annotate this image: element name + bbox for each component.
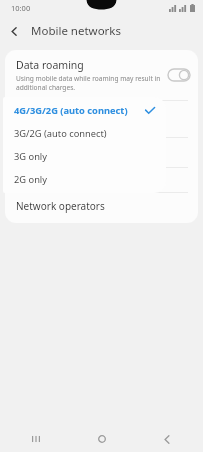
button[interactable]: Network operators	[5, 193, 198, 219]
staticText: Using mobile data while roaming may resu…	[16, 74, 161, 83]
staticText: Network operators	[16, 199, 105, 213]
staticText: 10:00	[11, 3, 31, 13]
button[interactable]: 3G/2G (auto connect)	[3, 122, 166, 145]
button[interactable]: Recent apps	[6, 426, 66, 452]
staticText: 2G only	[14, 173, 155, 186]
staticText: 4G/3G/2G (auto connect)	[14, 104, 145, 117]
button[interactable]	[5, 138, 198, 167]
button[interactable]: Home	[72, 426, 132, 452]
staticText: Mobile networks	[31, 23, 122, 39]
button[interactable]: 2G only	[3, 168, 166, 191]
button[interactable]: Back	[0, 17, 28, 45]
button[interactable]	[5, 168, 198, 192]
button[interactable]: Data roaming	[5, 50, 198, 100]
button[interactable]: 3G only	[3, 145, 166, 168]
staticText: additional charges.	[16, 83, 76, 92]
staticText: 3G/2G (auto connect)	[14, 127, 155, 140]
staticText: Data roaming	[16, 58, 84, 72]
button[interactable]: 4G/3G/2G (auto connect)	[3, 99, 166, 122]
button[interactable]: Data roaming toggle	[168, 69, 190, 81]
staticText: 3G only	[14, 150, 155, 163]
button[interactable]: Back	[137, 426, 197, 452]
button[interactable]	[5, 101, 198, 137]
